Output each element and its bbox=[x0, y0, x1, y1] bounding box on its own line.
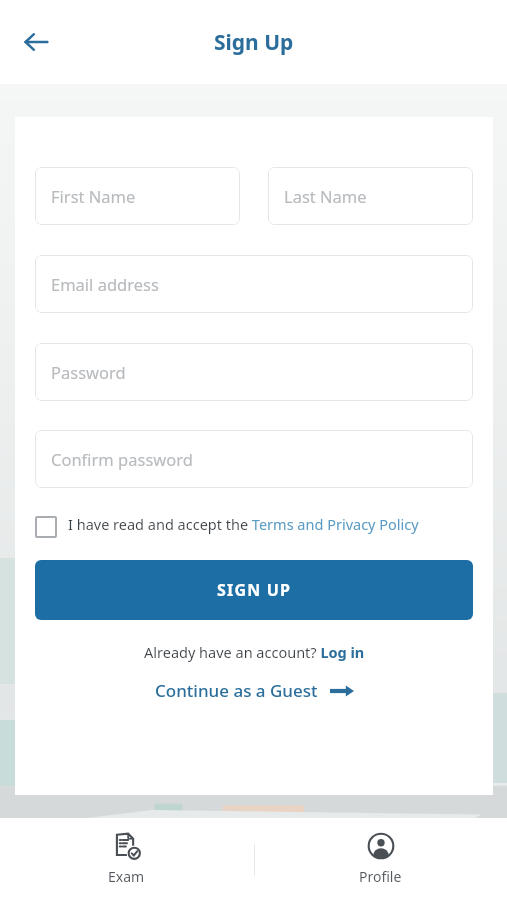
staticText: Email address bbox=[51, 273, 159, 295]
staticText: SIGN UP bbox=[217, 579, 292, 601]
staticText: Continue as a Guest bbox=[155, 679, 318, 702]
staticText: Confirm password bbox=[51, 448, 193, 470]
button[interactable]: First Name bbox=[35, 167, 240, 225]
button[interactable]: Password bbox=[35, 343, 473, 401]
staticText: I have read and accept the Terms and Pri… bbox=[68, 514, 419, 534]
staticText: Exam bbox=[108, 867, 145, 886]
staticText: Last Name bbox=[284, 185, 367, 207]
button[interactable]: Email address bbox=[35, 255, 473, 313]
button[interactable]: Continue as a Guest bbox=[35, 679, 473, 702]
button[interactable]: Already have an account? Log in bbox=[35, 642, 473, 662]
button[interactable]: Confirm password bbox=[35, 430, 473, 488]
button[interactable]: Back bbox=[10, 16, 62, 68]
button[interactable]: Profile bbox=[253, 818, 507, 900]
button[interactable]: Exam bbox=[0, 818, 253, 900]
staticText: Already have an account? Log in bbox=[144, 642, 365, 662]
staticText: Password bbox=[51, 361, 126, 383]
staticText: Sign Up bbox=[214, 28, 294, 57]
button[interactable]: SIGN UP bbox=[35, 560, 473, 620]
button[interactable]: Last Name bbox=[268, 167, 473, 225]
staticText: Profile bbox=[359, 867, 402, 886]
staticText: First Name bbox=[51, 185, 136, 207]
button[interactable]: I have read and accept the Terms and Pri… bbox=[35, 514, 473, 536]
